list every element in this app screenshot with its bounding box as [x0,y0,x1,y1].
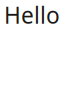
staticText: Hello [4,0,60,30]
